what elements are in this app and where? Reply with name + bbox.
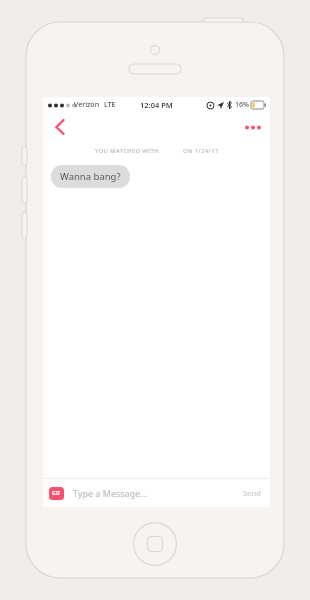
staticText: Verizon: [74, 100, 100, 110]
button[interactable]: Back: [47, 114, 73, 140]
button[interactable]: Send a GIF: [49, 487, 64, 500]
staticText: 16%: [235, 100, 249, 110]
staticText: LTE: [104, 100, 116, 110]
staticText: 12:04 PM: [140, 100, 173, 110]
staticText: GIF: [52, 490, 61, 497]
button[interactable]: Wanna bang?: [51, 165, 130, 188]
staticText: YOU MATCHED WITH: [95, 147, 159, 155]
button[interactable]: Type a Message...: [73, 487, 240, 499]
staticText: ON 1/24/17: [183, 147, 219, 155]
button[interactable]: Send: [240, 484, 264, 502]
staticText: Type a Message...: [73, 487, 148, 499]
staticText: Wanna bang?: [60, 170, 121, 183]
button[interactable]: More options: [240, 114, 266, 140]
staticText: Send: [243, 488, 261, 498]
